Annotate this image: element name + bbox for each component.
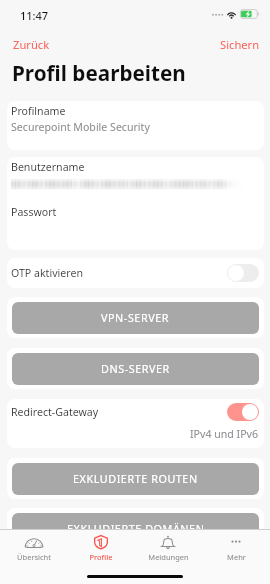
button[interactable]: OTP aktivieren xyxy=(7,258,264,288)
button[interactable]: VPN-SERVER xyxy=(12,302,259,334)
button[interactable]: Switch on xyxy=(227,403,259,421)
button[interactable]: Benutzername xyxy=(7,157,264,204)
staticText: Redirect-Gateway xyxy=(11,405,99,419)
staticText: Sichern xyxy=(220,37,260,52)
staticText: Profile xyxy=(89,552,113,562)
staticText: Zurück xyxy=(13,37,50,52)
staticText: Profil bearbeiten xyxy=(12,59,186,87)
staticText: IPv4 und IPv6 xyxy=(190,427,259,441)
staticText: Mehr xyxy=(227,552,246,562)
staticText: OTP aktivieren xyxy=(11,266,83,280)
button[interactable]: Zurück xyxy=(0,34,60,55)
button[interactable]: Profile xyxy=(67,530,134,544)
staticText: EXKLUDIERTE DOMÄNEN xyxy=(67,521,205,536)
button[interactable]: Meldungen xyxy=(134,530,202,544)
button[interactable]: Switch off xyxy=(227,264,259,282)
button[interactable]: Redirect-Gateway xyxy=(11,399,259,424)
staticText: Profilname xyxy=(11,104,66,118)
button[interactable]: EXKLUDIERTE DOMÄNEN xyxy=(12,513,259,545)
button[interactable]: Passwort xyxy=(7,204,264,250)
staticText: DNS-SERVER xyxy=(101,361,170,376)
staticText: EXKLUDIERTE ROUTEN xyxy=(73,471,198,486)
button[interactable]: EXKLUDIERTE ROUTEN xyxy=(12,463,259,495)
button[interactable]: Mehr xyxy=(202,530,270,544)
staticText: VPN-SERVER xyxy=(101,310,170,325)
button[interactable]: DNS-SERVER xyxy=(12,353,259,385)
staticText: 11:47 xyxy=(20,8,49,23)
staticText: Benutzername xyxy=(11,160,85,174)
button[interactable]: Sichern xyxy=(210,34,270,55)
button[interactable]: Profilname xyxy=(7,101,264,150)
staticText: Passwort xyxy=(11,205,57,219)
staticText: Übersicht xyxy=(17,552,51,562)
button[interactable]: Übersicht xyxy=(0,530,67,544)
staticText: Securepoint Mobile Security xyxy=(11,120,150,134)
staticText: Meldungen xyxy=(148,552,189,562)
